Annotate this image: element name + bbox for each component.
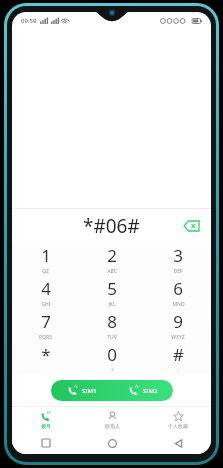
staticText: WXYZ <box>171 334 185 341</box>
staticText: # <box>173 343 184 366</box>
button[interactable]: 8 <box>79 309 145 342</box>
button[interactable]: Recent apps <box>12 432 79 454</box>
button[interactable]: 2 <box>79 243 145 276</box>
staticText: 6 <box>173 277 183 300</box>
staticText: 0 <box>107 343 117 366</box>
staticText: *#06# <box>83 213 140 239</box>
staticText: 1 <box>41 244 51 267</box>
staticText: SIM1 <box>82 387 97 395</box>
staticText: 8 <box>107 310 117 333</box>
button[interactable]: 拨号 <box>12 407 79 432</box>
staticText: 联系人 <box>105 423 120 429</box>
staticText: DEF <box>173 268 183 275</box>
staticText: GHI <box>41 301 51 308</box>
staticText: 09:59 <box>21 17 37 25</box>
staticText: QZ <box>42 268 49 275</box>
button[interactable]: Backspace <box>180 215 202 237</box>
staticText: 5 <box>107 277 117 300</box>
staticText: : <box>177 367 179 374</box>
button[interactable]: 6 <box>145 276 211 309</box>
button[interactable]: * <box>12 342 79 375</box>
button[interactable]: Back <box>145 432 211 454</box>
button[interactable]: 个人收藏 <box>145 407 211 432</box>
staticText: 4 <box>41 277 51 300</box>
staticText: * <box>41 343 51 366</box>
button[interactable]: 0 <box>79 342 145 375</box>
staticText: + <box>111 367 114 374</box>
staticText: 7 <box>41 310 51 333</box>
button[interactable]: 1 <box>12 243 79 276</box>
staticText: JKL <box>108 301 116 308</box>
button[interactable]: 9 <box>145 309 211 342</box>
staticText: 个人收藏 <box>168 423 188 429</box>
button[interactable]: 5 <box>79 276 145 309</box>
staticText: 拨号 <box>41 423 51 429</box>
button[interactable]: 联系人 <box>79 407 145 432</box>
staticText: 9 <box>173 310 183 333</box>
staticText: MNO <box>172 301 185 308</box>
staticText: SIM2 <box>143 387 158 395</box>
button[interactable]: 7 <box>12 309 79 342</box>
staticText: TUV <box>107 334 117 341</box>
button[interactable]: 4 <box>12 276 79 309</box>
staticText: 2 <box>107 244 117 267</box>
button[interactable]: Home <box>79 432 145 454</box>
button[interactable]: SIM2 <box>112 380 173 401</box>
button[interactable]: 3 <box>145 243 211 276</box>
staticText: . <box>45 367 47 374</box>
button[interactable]: SIM1 <box>51 380 112 401</box>
button[interactable]: # <box>145 342 211 375</box>
staticText: ABC <box>107 268 117 275</box>
staticText: PQRS <box>39 334 52 341</box>
staticText: 3 <box>173 244 183 267</box>
